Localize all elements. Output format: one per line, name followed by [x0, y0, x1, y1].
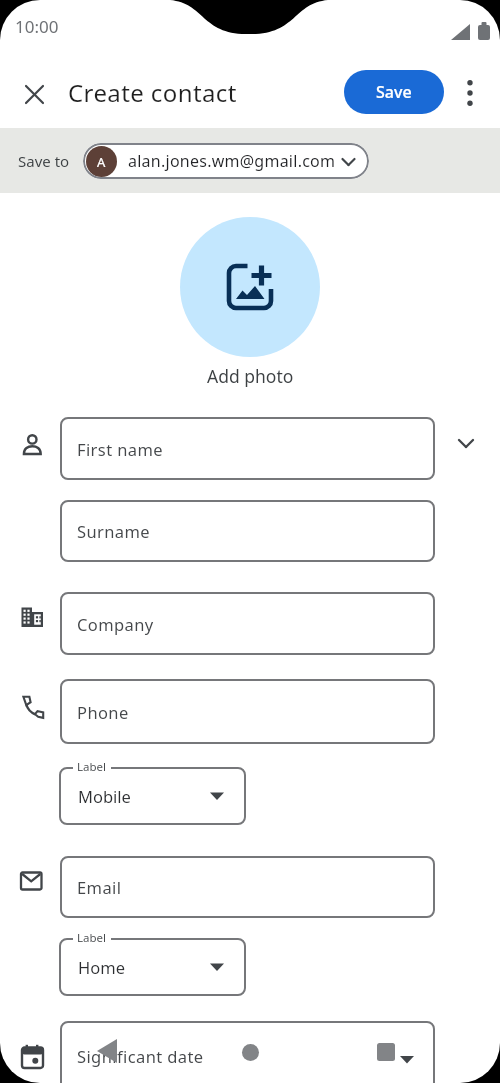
button[interactable]: Significant date	[60, 1021, 435, 1083]
staticText: Phone	[77, 701, 129, 723]
button[interactable]: Save	[344, 70, 444, 114]
button[interactable]: Phone	[60, 679, 435, 744]
staticText: Mobile	[78, 785, 131, 807]
button[interactable]: Mobile	[59, 767, 246, 825]
staticText: Email	[77, 876, 122, 898]
staticText: Significant date	[77, 1045, 204, 1067]
staticText: Surname	[77, 520, 151, 542]
button[interactable]: Home	[59, 938, 246, 996]
button[interactable]	[364, 1029, 408, 1073]
staticText: Label	[77, 759, 107, 775]
button[interactable]	[228, 1029, 272, 1073]
staticText: 10:00	[15, 15, 59, 38]
staticText: Home	[78, 956, 125, 978]
button[interactable]: A	[83, 143, 369, 179]
button[interactable]	[448, 425, 484, 461]
staticText: alan.jones.wm@gmail.com	[128, 150, 336, 172]
staticText: Label	[77, 930, 107, 946]
staticText: Save	[376, 81, 412, 103]
staticText: Create contact	[68, 76, 237, 109]
button[interactable]: First name	[60, 417, 435, 480]
staticText: First name	[77, 438, 163, 460]
button[interactable]	[86, 1029, 130, 1073]
button[interactable]: Company	[60, 592, 435, 655]
button[interactable]	[454, 74, 486, 112]
button[interactable]	[16, 76, 52, 112]
staticText: Save to	[18, 151, 70, 171]
button[interactable]	[180, 217, 320, 357]
staticText: A	[97, 153, 106, 171]
button[interactable]: Surname	[60, 500, 435, 562]
staticText: Add photo	[207, 364, 294, 388]
staticText: Company	[77, 613, 154, 635]
button[interactable]: Email	[60, 856, 435, 918]
